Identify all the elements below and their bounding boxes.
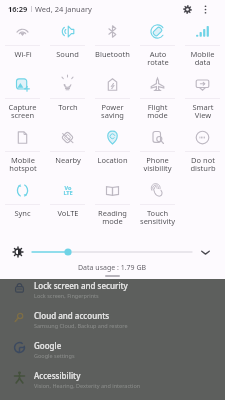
button[interactable]: Accessibility: [0, 369, 225, 399]
staticText: Wi-Fi: [14, 49, 32, 59]
staticText: Capture screen: [8, 102, 37, 121]
button[interactable]: Mobile data: [180, 18, 225, 71]
staticText: Auto rotate: [147, 49, 169, 68]
button[interactable]: Bluetooth: [90, 18, 135, 71]
staticText: Lock screen, Fingerprints: [34, 292, 99, 299]
staticText: Google settings: [34, 352, 75, 359]
staticText: Reading mode: [98, 208, 127, 227]
staticText: 16:29: [8, 4, 28, 14]
staticText: Nearby: [55, 155, 81, 165]
button[interactable]: Reading mode: [90, 177, 135, 230]
staticText: Google: [34, 340, 62, 351]
staticText: Samsung Cloud, Backup and restore: [34, 322, 128, 329]
button[interactable]: Torch: [45, 71, 90, 124]
staticText: Torch: [58, 102, 78, 112]
button[interactable]: Lock screen and security: [0, 279, 225, 309]
button[interactable]: Capture screen: [0, 71, 45, 124]
staticText: Accessibility: [34, 370, 81, 381]
button[interactable]: Wi-Fi: [0, 18, 45, 71]
staticText: VoLTE: [57, 208, 79, 218]
staticText: Sync: [14, 208, 31, 218]
staticText: Phone visibility: [143, 155, 172, 174]
staticText: Lock screen and security: [34, 280, 128, 291]
staticText: Data usage : 1.79 GB: [78, 263, 147, 273]
staticText: Vision, Hearing, Dexterity and interacti…: [34, 382, 141, 389]
staticText: Mobile hotspot: [9, 155, 37, 174]
staticText: Smart View: [192, 102, 214, 121]
staticText: Location: [97, 155, 128, 165]
button[interactable]: Sync: [0, 177, 45, 230]
button[interactable]: Touch sensitivity: [135, 177, 180, 230]
button[interactable]: Google: [0, 339, 225, 369]
button[interactable]: Vo LTE: [45, 177, 90, 230]
button[interactable]: Phone visibility: [135, 124, 180, 177]
staticText: Bluetooth: [95, 49, 130, 59]
staticText: Touch sensitivity: [140, 208, 175, 227]
staticText: Flight mode: [147, 102, 168, 121]
button[interactable]: Nearby: [45, 124, 90, 177]
button[interactable]: Settings: [179, 1, 195, 17]
button[interactable]: Flight mode: [135, 71, 180, 124]
button[interactable]: Do not disturb: [180, 124, 225, 177]
staticText: Mobile data: [190, 49, 215, 68]
button[interactable]: Auto rotate: [135, 18, 180, 71]
staticText: Cloud and accounts: [34, 310, 110, 321]
button[interactable]: Smart View: [180, 71, 225, 124]
button[interactable]: Mobile hotspot: [0, 124, 45, 177]
staticText: Wed, 24 January: [35, 4, 92, 14]
button[interactable]: Sound: [45, 18, 90, 71]
button[interactable]: Location: [90, 124, 135, 177]
button[interactable]: Expand: [199, 246, 212, 259]
button[interactable]: Cloud and accounts: [0, 309, 225, 339]
button[interactable]: Power saving: [90, 71, 135, 124]
button[interactable]: More options: [198, 2, 212, 16]
staticText: Do not disturb: [190, 155, 216, 174]
staticText: Power saving: [101, 102, 124, 121]
staticText: Vo LTE: [63, 184, 73, 197]
staticText: Sound: [56, 49, 79, 59]
